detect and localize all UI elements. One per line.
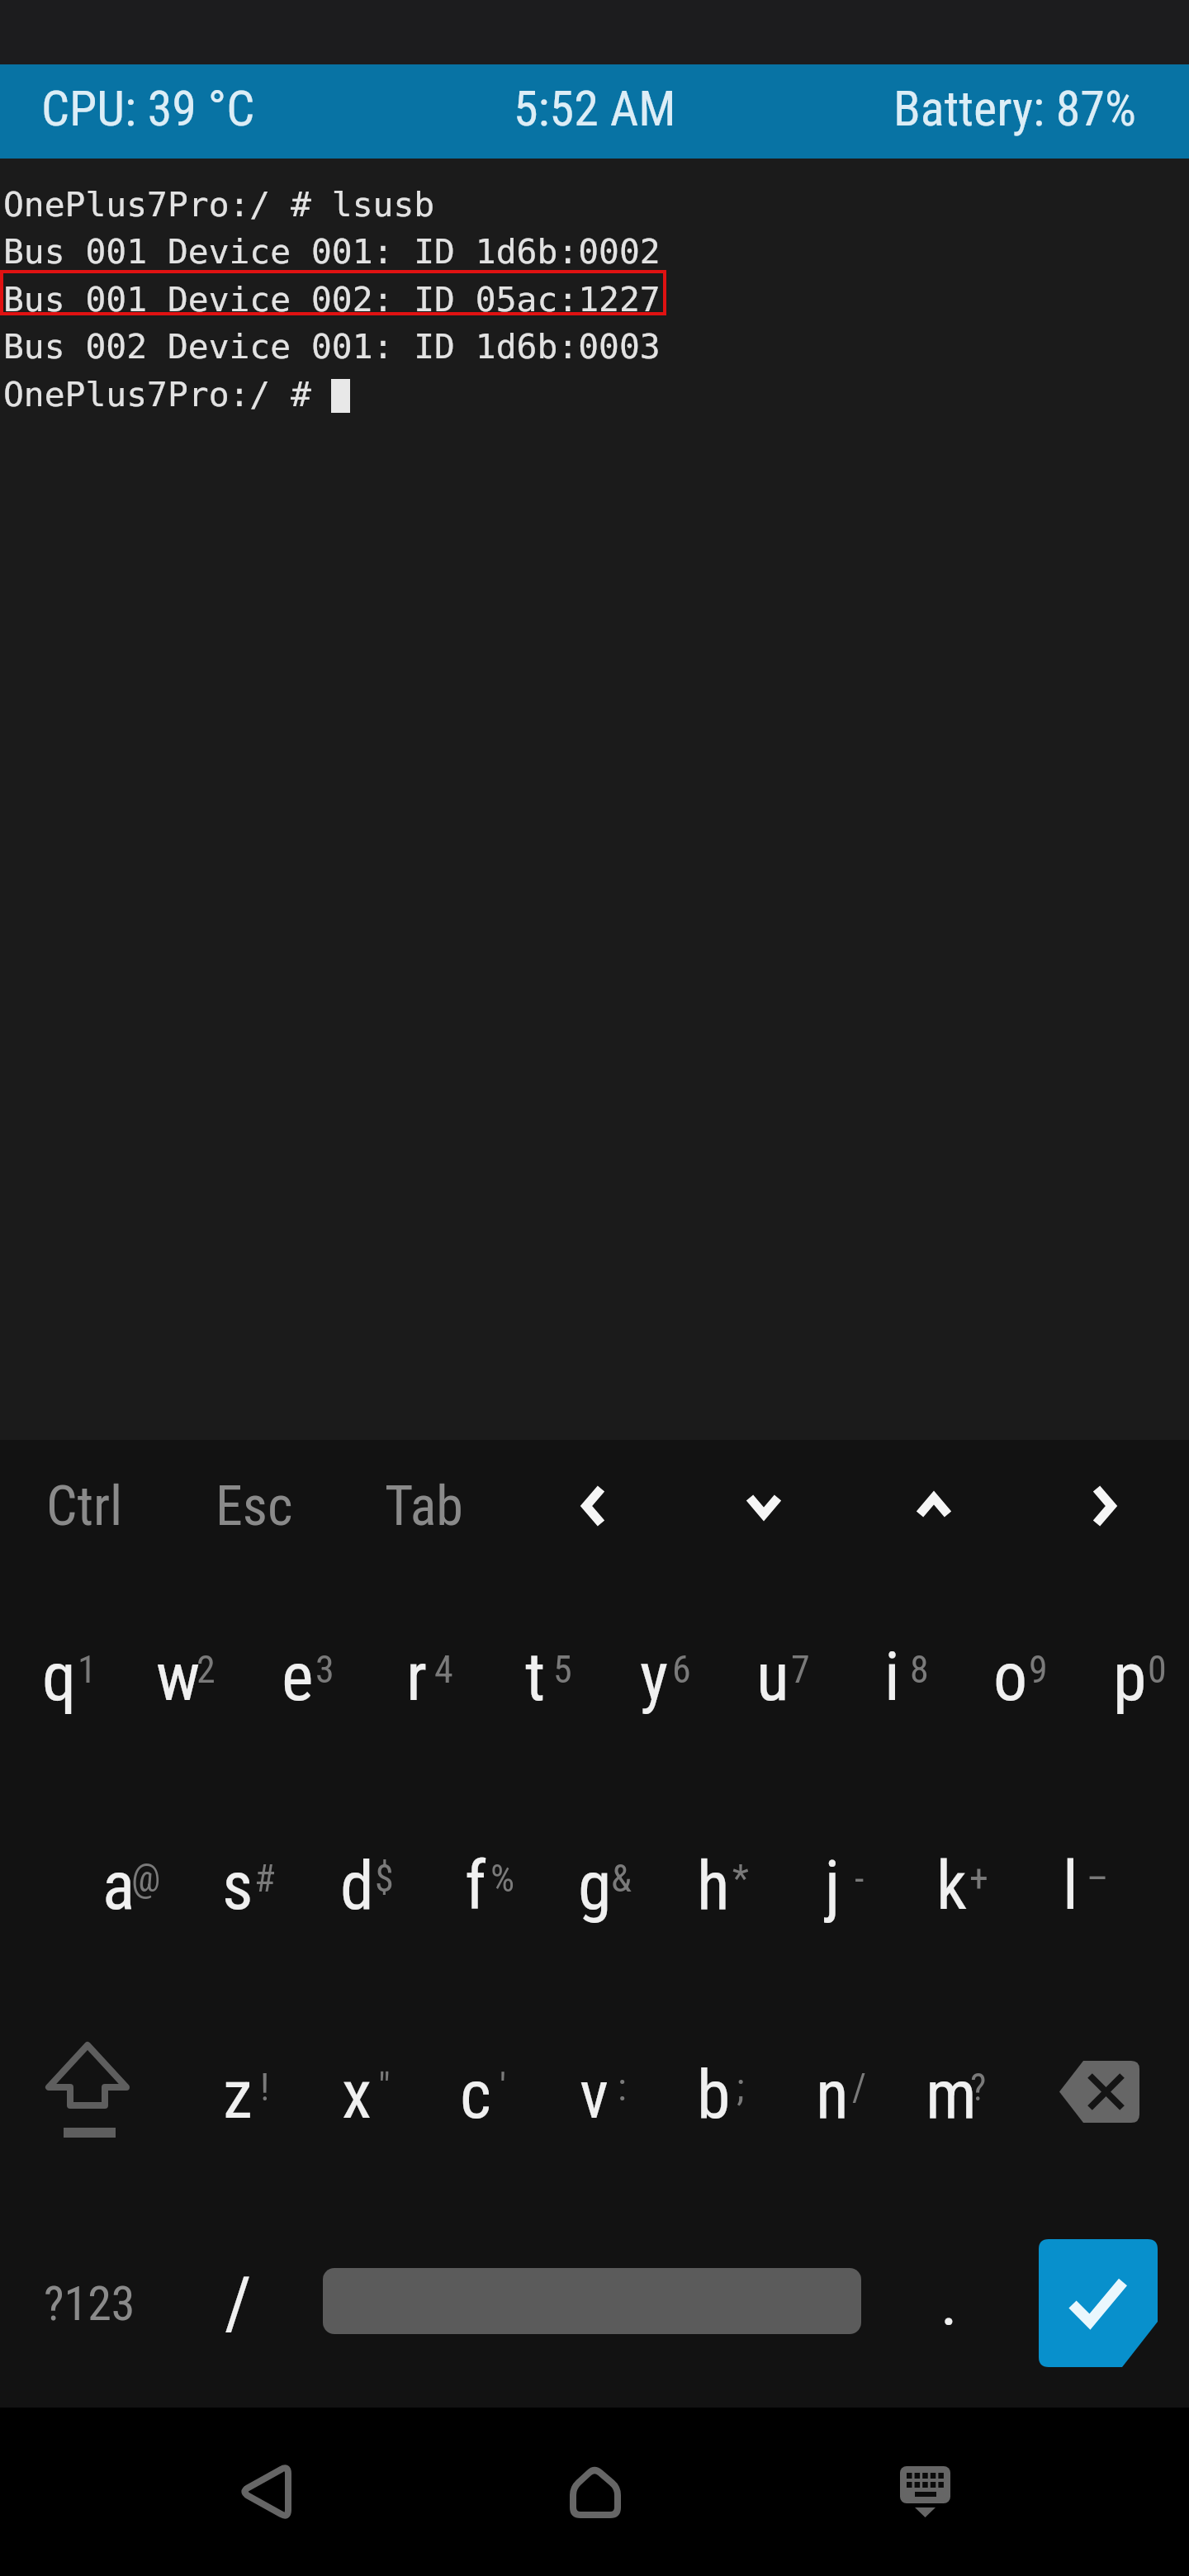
staticText: ? xyxy=(970,2065,987,2110)
staticText: / xyxy=(225,2261,252,2346)
staticText: - xyxy=(855,1856,865,1901)
button[interactable]: c xyxy=(416,1990,535,2199)
button[interactable] xyxy=(1011,1990,1189,2199)
button[interactable]: f xyxy=(416,1781,535,1990)
staticText: s xyxy=(222,1846,253,1925)
button[interactable]: a xyxy=(59,1781,178,1990)
staticText: l xyxy=(1063,1846,1078,1925)
staticText: Bus 001 Device 001: ID 1d6b:0002 xyxy=(3,232,661,272)
staticText: & xyxy=(611,1856,632,1901)
staticText: x xyxy=(342,2055,372,2134)
button[interactable]: Esc xyxy=(169,1440,339,1572)
button[interactable]: p xyxy=(1070,1572,1189,1781)
staticText: Bus 001 Device 002: ID 05ac:1227 xyxy=(3,280,661,320)
button[interactable] xyxy=(198,2426,330,2558)
button[interactable]: k xyxy=(892,1781,1011,1990)
button[interactable] xyxy=(857,2426,989,2558)
staticText: : xyxy=(618,2065,627,2110)
staticText: b xyxy=(697,2055,731,2134)
staticText: u xyxy=(756,1637,789,1717)
button[interactable]: Ctrl xyxy=(0,1440,169,1572)
button[interactable]: ?123 xyxy=(0,2199,178,2408)
staticText: 5 xyxy=(553,1647,572,1692)
button[interactable]: e xyxy=(238,1572,357,1781)
staticText: y xyxy=(640,1637,669,1717)
button[interactable]: n xyxy=(773,1990,892,2199)
button[interactable] xyxy=(509,1440,679,1572)
staticText: % xyxy=(490,1856,515,1901)
staticText: 6 xyxy=(672,1647,691,1692)
button[interactable]: g xyxy=(535,1781,654,1990)
button[interactable]: x xyxy=(297,1990,416,2199)
staticText: r xyxy=(406,1637,427,1717)
staticText: 5:52 AM xyxy=(514,79,676,137)
staticText: " xyxy=(378,2065,391,2110)
staticText: t xyxy=(525,1637,546,1717)
staticText: ' xyxy=(500,2065,507,2110)
staticText: c xyxy=(460,2055,491,2134)
staticText: – xyxy=(1087,1856,1109,1901)
button[interactable]: s xyxy=(178,1781,297,1990)
staticText: q xyxy=(42,1637,77,1717)
staticText: Battery: 87% xyxy=(893,79,1136,137)
staticText: Bus 002 Device 001: ID 1d6b:0003 xyxy=(3,327,661,367)
staticText: 2 xyxy=(197,1647,216,1692)
staticText: z xyxy=(223,2055,253,2134)
button[interactable]: b xyxy=(654,1990,773,2199)
staticText: j xyxy=(825,1846,841,1925)
button[interactable] xyxy=(849,1440,1019,1572)
button[interactable]: u xyxy=(713,1572,832,1781)
button[interactable]: t xyxy=(476,1572,594,1781)
staticText: ?123 xyxy=(44,2275,135,2332)
staticText: + xyxy=(969,1856,988,1901)
staticText: g xyxy=(578,1846,612,1925)
staticText: m xyxy=(926,2055,977,2134)
button[interactable] xyxy=(679,1440,849,1572)
button[interactable] xyxy=(1039,2239,1158,2367)
button[interactable] xyxy=(323,2268,861,2334)
button[interactable]: / xyxy=(178,2199,297,2408)
staticText: n xyxy=(816,2055,849,2134)
button[interactable]: Tab xyxy=(339,1440,509,1572)
staticText: # xyxy=(254,1856,276,1901)
staticText: @ xyxy=(131,1856,161,1901)
staticText: OnePlus7Pro:/ # xyxy=(3,375,332,414)
staticText: w xyxy=(156,1637,201,1717)
button[interactable]: l xyxy=(1011,1781,1130,1990)
staticText: * xyxy=(732,1856,749,1901)
button[interactable]: q xyxy=(0,1572,119,1781)
staticText: 1 xyxy=(78,1647,97,1692)
staticText: p xyxy=(1113,1637,1147,1717)
staticText: i xyxy=(884,1637,900,1717)
staticText: k xyxy=(936,1846,967,1925)
staticText: 7 xyxy=(791,1647,810,1692)
staticText: d xyxy=(340,1846,374,1925)
button[interactable]: j xyxy=(773,1781,892,1990)
button[interactable] xyxy=(1019,1440,1189,1572)
staticText: 9 xyxy=(1029,1647,1048,1692)
button[interactable]: v xyxy=(535,1990,654,2199)
button[interactable]: y xyxy=(594,1572,713,1781)
button[interactable]: r xyxy=(357,1572,476,1781)
button[interactable]: m xyxy=(892,1990,1011,2199)
staticText: Tab xyxy=(385,1475,463,1538)
staticText: 3 xyxy=(315,1647,334,1692)
staticText: ! xyxy=(260,2065,270,2110)
button[interactable]: w xyxy=(119,1572,238,1781)
staticText: $ xyxy=(375,1856,394,1901)
staticText: . xyxy=(940,2266,958,2341)
staticText: e xyxy=(282,1637,314,1717)
button[interactable] xyxy=(0,1990,178,2199)
button[interactable] xyxy=(528,2426,661,2558)
button[interactable]: z xyxy=(178,1990,297,2199)
staticText: ; xyxy=(737,2065,745,2110)
button[interactable]: . xyxy=(887,2199,1011,2408)
button[interactable]: o xyxy=(951,1572,1070,1781)
staticText: a xyxy=(102,1846,135,1925)
button[interactable]: i xyxy=(832,1572,951,1781)
staticText: / xyxy=(852,2065,867,2110)
button[interactable]: h xyxy=(654,1781,773,1990)
staticText: OnePlus7Pro:/ # lsusb xyxy=(3,185,435,225)
button[interactable]: d xyxy=(297,1781,416,1990)
staticText: Esc xyxy=(216,1475,293,1538)
